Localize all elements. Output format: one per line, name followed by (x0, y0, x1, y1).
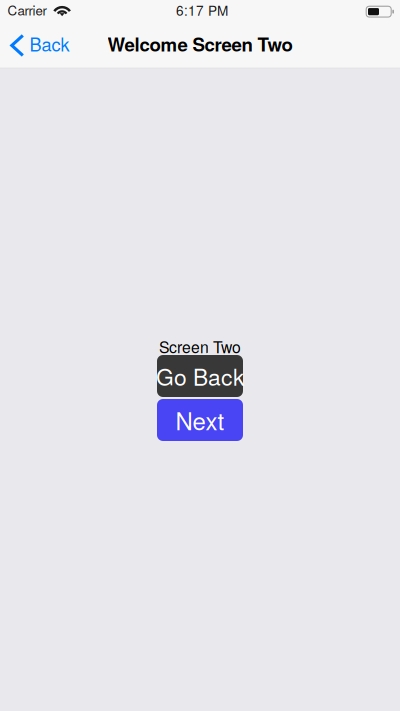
button[interactable]: Go Back (157, 355, 243, 397)
staticText: Next (175, 403, 224, 437)
staticText: Back (29, 31, 69, 57)
button[interactable]: Back (0, 21, 79, 68)
staticText: Carrier (7, 0, 46, 19)
staticText: Go Back (156, 360, 244, 392)
staticText: Screen Two (159, 335, 241, 358)
button[interactable]: Next (157, 399, 243, 441)
staticText: 6:17 PM (176, 0, 228, 20)
staticText: Welcome Screen Two (107, 30, 292, 57)
